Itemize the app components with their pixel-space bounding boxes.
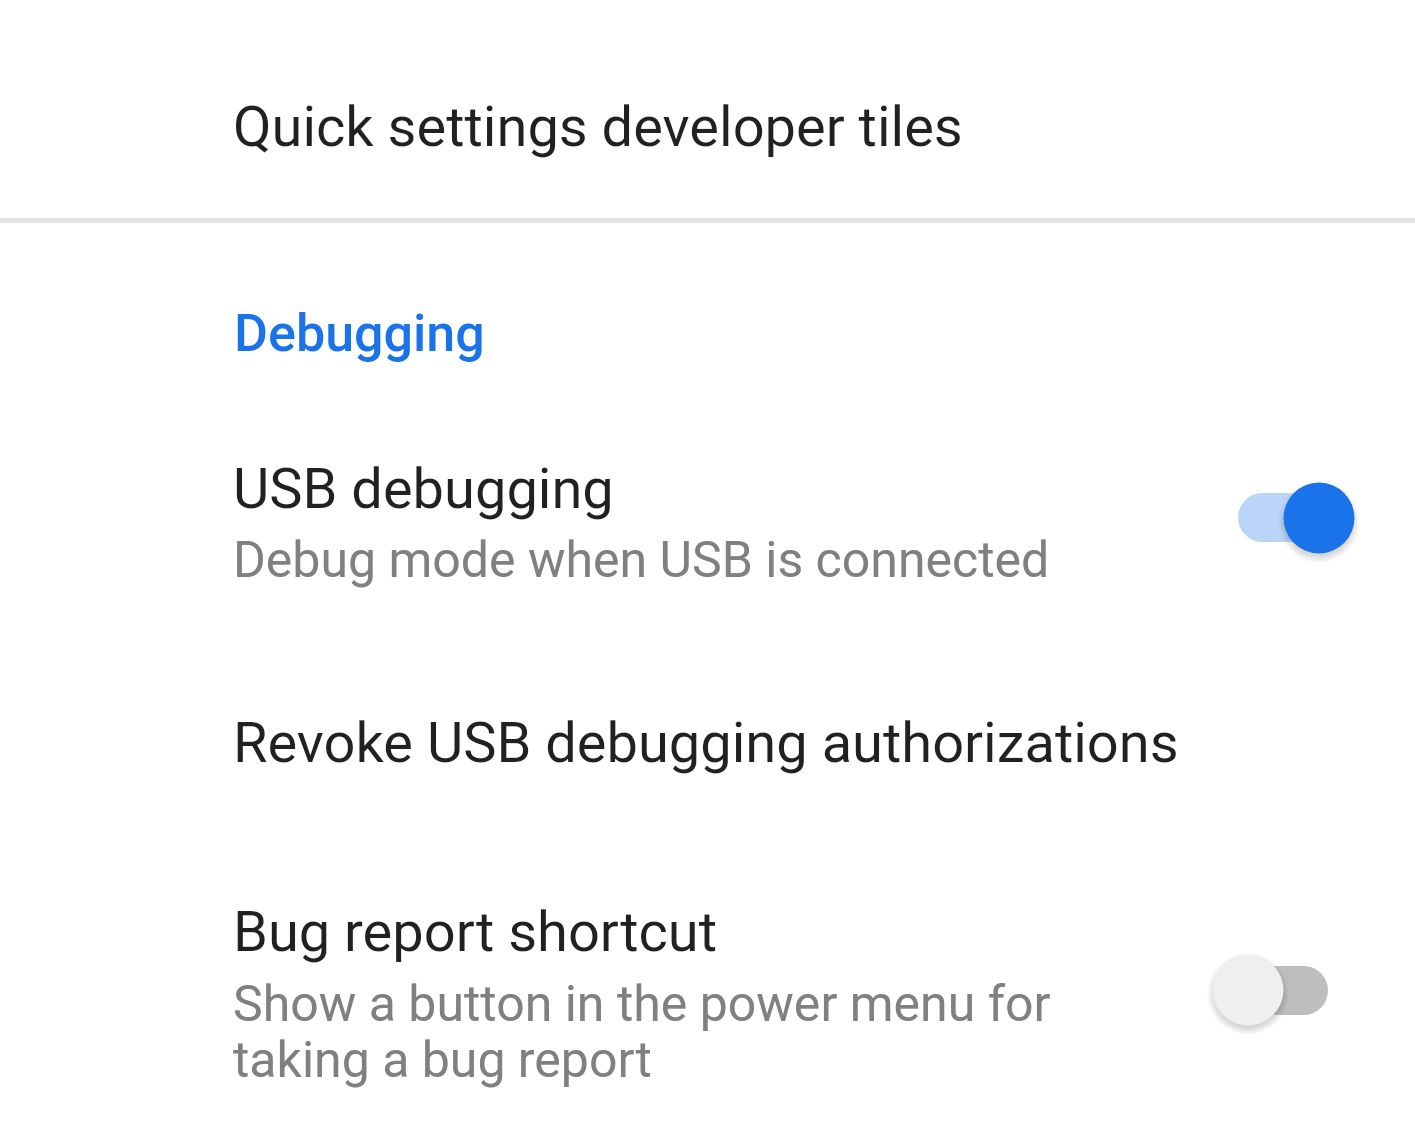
staticText: Debugging (234, 303, 485, 364)
staticText: USB debugging (233, 456, 614, 522)
staticText: Bug report shortcut (233, 899, 718, 965)
staticText: taking a bug report (233, 1031, 652, 1090)
button[interactable] (0, 398, 1415, 638)
button[interactable] (0, 852, 1415, 1132)
staticText: Revoke USB debugging authorizations (233, 710, 1179, 776)
staticText: Quick settings developer tiles (233, 94, 963, 160)
button[interactable] (0, 640, 1415, 840)
button[interactable] (0, 0, 1415, 218)
staticText: Show a button in the power menu for (233, 975, 1051, 1034)
staticText: Debug mode when USB is connected (233, 531, 1050, 590)
